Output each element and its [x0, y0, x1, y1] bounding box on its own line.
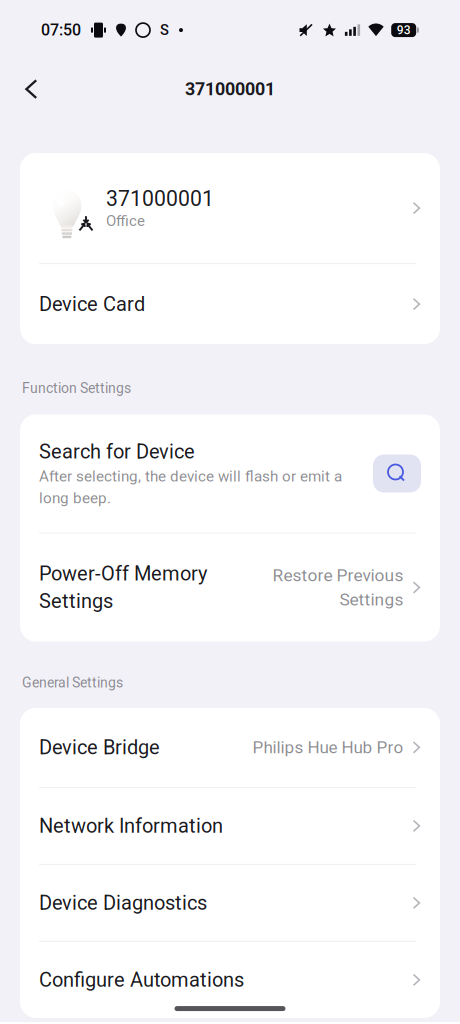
staticText: Office: [106, 212, 145, 230]
button[interactable]: Back: [13, 66, 50, 112]
button[interactable]: Configure Automations: [20, 942, 440, 1018]
staticText: Device Diagnostics: [39, 891, 207, 915]
staticText: Restore Previous: [272, 565, 403, 585]
staticText: long beep.: [39, 489, 111, 507]
staticText: Device Bridge: [39, 736, 160, 759]
staticText: Power-Off Memory: [39, 562, 207, 585]
staticText: 371000001: [106, 186, 214, 211]
staticText: 93: [397, 23, 411, 37]
button[interactable]: Power-Off Memory: [20, 533, 440, 641]
staticText: After selecting, the device will flash o…: [39, 467, 342, 485]
staticText: Function Settings: [22, 380, 131, 396]
button[interactable]: 371000001: [20, 153, 440, 263]
staticText: Philips Hue Hub Pro: [252, 737, 403, 757]
staticText: 07:50: [41, 21, 81, 39]
staticText: 371000001: [185, 79, 275, 99]
staticText: General Settings: [22, 674, 123, 691]
button[interactable]: Device Card: [20, 264, 440, 344]
staticText: Settings: [339, 589, 403, 610]
button[interactable]: Search for Device: [20, 414, 440, 532]
staticText: S: [160, 21, 169, 39]
staticText: Settings: [39, 589, 113, 613]
staticText: Device Card: [39, 292, 145, 316]
button[interactable]: Network Information: [20, 788, 440, 864]
button[interactable]: Device Diagnostics: [20, 865, 440, 941]
staticText: Search for Device: [39, 440, 195, 463]
button[interactable]: Device Bridge: [20, 708, 440, 787]
staticText: Configure Automations: [39, 968, 244, 992]
staticText: Network Information: [39, 814, 223, 838]
